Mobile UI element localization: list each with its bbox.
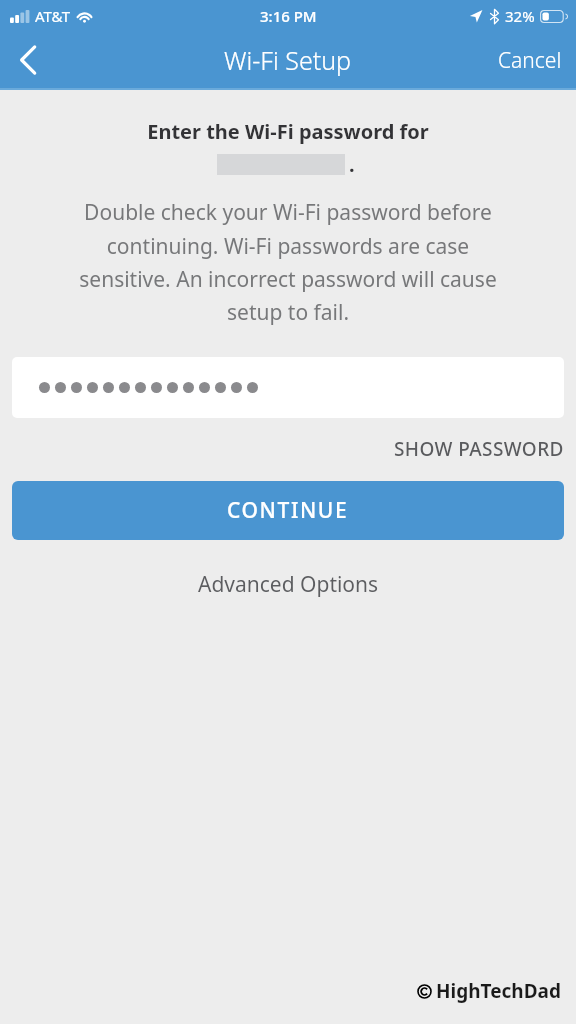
staticText: HighTechDad xyxy=(436,978,562,1004)
staticText: CONTINUE xyxy=(227,496,349,525)
staticText: SHOW PASSWORD xyxy=(394,436,564,462)
staticText: Wi-Fi Setup xyxy=(224,43,352,77)
staticText: Advanced Options xyxy=(198,570,379,599)
button[interactable]: Cancel xyxy=(484,36,576,85)
staticText: . xyxy=(349,151,355,178)
staticText: 32% xyxy=(505,6,535,26)
button[interactable]: Back xyxy=(0,32,56,88)
staticText: Double check your Wi-Fi password before … xyxy=(60,198,516,326)
staticText: Enter the Wi-Fi password for xyxy=(0,118,576,145)
staticText: Cancel xyxy=(498,46,562,75)
staticText: 3:16 PM xyxy=(260,6,317,26)
button[interactable]: SHOW PASSWORD xyxy=(382,430,576,468)
button[interactable]: Password field xyxy=(12,357,564,418)
button[interactable]: CONTINUE xyxy=(12,481,564,540)
staticText: AT&T xyxy=(35,6,70,26)
button[interactable]: Advanced Options xyxy=(180,562,397,607)
